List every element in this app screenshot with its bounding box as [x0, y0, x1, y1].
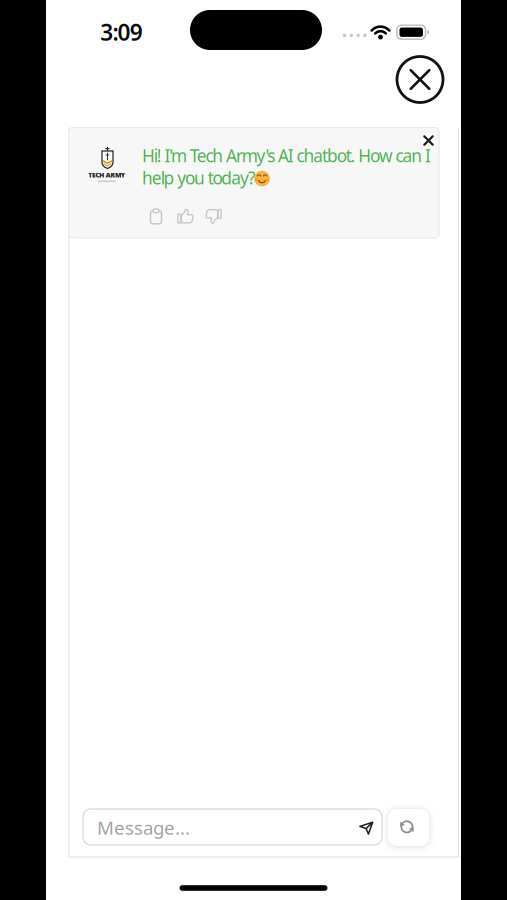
staticText: help you today? — [142, 166, 256, 189]
button[interactable]: Good response — [176, 207, 194, 225]
button[interactable]: Restart conversation — [387, 808, 430, 847]
button[interactable]: Dismiss message — [420, 132, 437, 149]
staticText: 3:09 — [100, 17, 143, 47]
button[interactable]: Message input — [83, 809, 382, 845]
button[interactable]: Copy — [147, 207, 165, 225]
button[interactable]: Close chat — [395, 55, 444, 104]
button[interactable]: Send — [351, 813, 381, 843]
staticText: Hi! I'm Tech Army's AI chatbot. How can … — [142, 144, 431, 167]
staticText: Message... — [97, 815, 190, 840]
staticText: TECH ARMY — [88, 171, 125, 179]
button[interactable]: Bad response — [204, 207, 222, 225]
